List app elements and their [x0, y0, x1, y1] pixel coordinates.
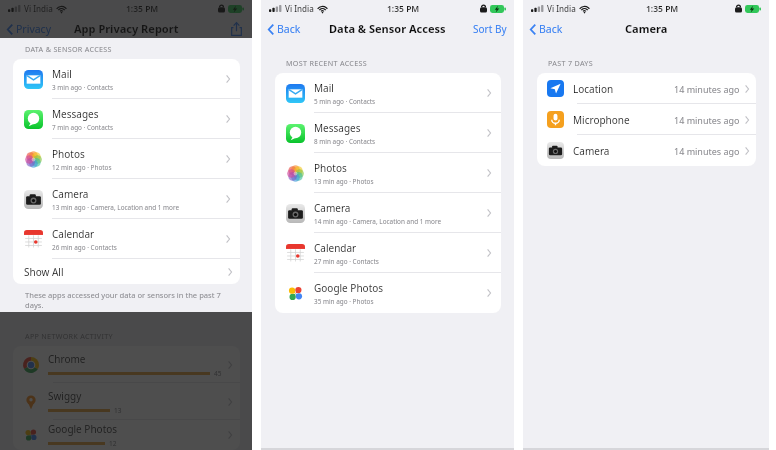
staticText: 1:35 PM [646, 3, 679, 15]
staticText: Privacy [16, 22, 52, 36]
staticText: 14 minutes ago [674, 83, 740, 95]
button[interactable]: Messages [275, 113, 501, 153]
staticText: Camera [52, 187, 89, 201]
staticText: Messages [52, 107, 99, 121]
staticText: Chrome [48, 352, 86, 366]
staticText: Show All [24, 265, 228, 279]
staticText: 14 minutes ago [674, 145, 740, 157]
button[interactable]: Photos [13, 139, 240, 179]
staticText: Camera [314, 201, 351, 215]
staticText: Mail [314, 81, 334, 95]
button[interactable]: Calendar [275, 233, 501, 273]
button[interactable]: Mail [275, 73, 501, 113]
staticText: 1:35 PM [126, 3, 159, 15]
button[interactable]: Microphone [537, 104, 756, 135]
button[interactable]: Location [537, 73, 756, 104]
button[interactable]: Show All [13, 259, 240, 284]
staticText: PAST 7 DAYS [548, 58, 593, 68]
button[interactable]: Sort By [473, 22, 507, 36]
button[interactable]: Camera [537, 135, 756, 166]
staticText: These apps accessed your data or sensors… [25, 290, 221, 310]
staticText: APP NETWORK ACTIVITY [25, 331, 113, 341]
button[interactable]: Photos [275, 153, 501, 193]
staticText: Calendar [52, 227, 95, 241]
staticText: Location [573, 82, 674, 96]
staticText: Google Photos [48, 422, 118, 436]
staticText: Messages [314, 121, 361, 135]
button[interactable]: Back [530, 22, 567, 36]
staticText: Calendar [314, 241, 357, 255]
staticText: DATA & SENSOR ACCESS [25, 44, 112, 54]
staticText: MOST RECENT ACCESS [286, 58, 367, 68]
staticText: 12 min ago · Photos [52, 163, 112, 172]
button[interactable]: Google Photos [13, 420, 240, 450]
staticText: Back [277, 22, 301, 36]
button[interactable]: Privacy [7, 22, 56, 36]
staticText: Photos [52, 147, 85, 161]
staticText: Swiggy [48, 389, 82, 403]
staticText: Google Photos [314, 281, 384, 295]
staticText: 12 [109, 439, 117, 448]
staticText: Data & Sensor Access [329, 21, 446, 36]
staticText: 3 min ago · Contacts [52, 83, 114, 92]
staticText: 8 min ago · Contacts [314, 137, 376, 146]
staticText: 13 min ago · Photos [314, 177, 374, 186]
staticText: 27 min ago · Contacts [314, 257, 379, 266]
staticText: 5 min ago · Contacts [314, 97, 376, 106]
staticText: Camera [573, 144, 674, 158]
staticText: 35 min ago · Photos [314, 297, 374, 306]
staticText: 14 min ago · Camera, Location and 1 more [314, 217, 441, 226]
staticText: Vi India [285, 3, 314, 14]
staticText: 14 minutes ago [674, 114, 740, 126]
staticText: Vi India [24, 3, 53, 14]
button[interactable]: Google Photos [275, 273, 501, 313]
staticText: Photos [314, 161, 347, 175]
staticText: Microphone [573, 113, 674, 127]
staticText: Mail [52, 67, 72, 81]
button[interactable]: Swiggy [13, 383, 240, 420]
button[interactable]: Calendar [13, 219, 240, 259]
staticText: 45 [214, 369, 222, 378]
staticText: 13 min ago · Camera, Location and 1 more [52, 203, 179, 212]
button[interactable]: Mail [13, 59, 240, 99]
staticText: 13 [114, 406, 122, 415]
staticText: Camera [625, 21, 668, 36]
staticText: 26 min ago · Contacts [52, 243, 117, 252]
button[interactable]: Back [268, 22, 305, 36]
staticText: 1:35 PM [387, 3, 420, 15]
staticText: Back [539, 22, 563, 36]
staticText: 7 min ago · Contacts [52, 123, 114, 132]
button[interactable]: Messages [13, 99, 240, 139]
button[interactable]: Camera [13, 179, 240, 219]
staticText: Vi India [547, 3, 576, 14]
button[interactable]: Chrome [13, 346, 240, 383]
button[interactable]: Camera [275, 193, 501, 233]
staticText: Sort By [473, 22, 507, 36]
staticText: App Privacy Report [74, 21, 179, 36]
button[interactable]: Share [227, 20, 245, 38]
